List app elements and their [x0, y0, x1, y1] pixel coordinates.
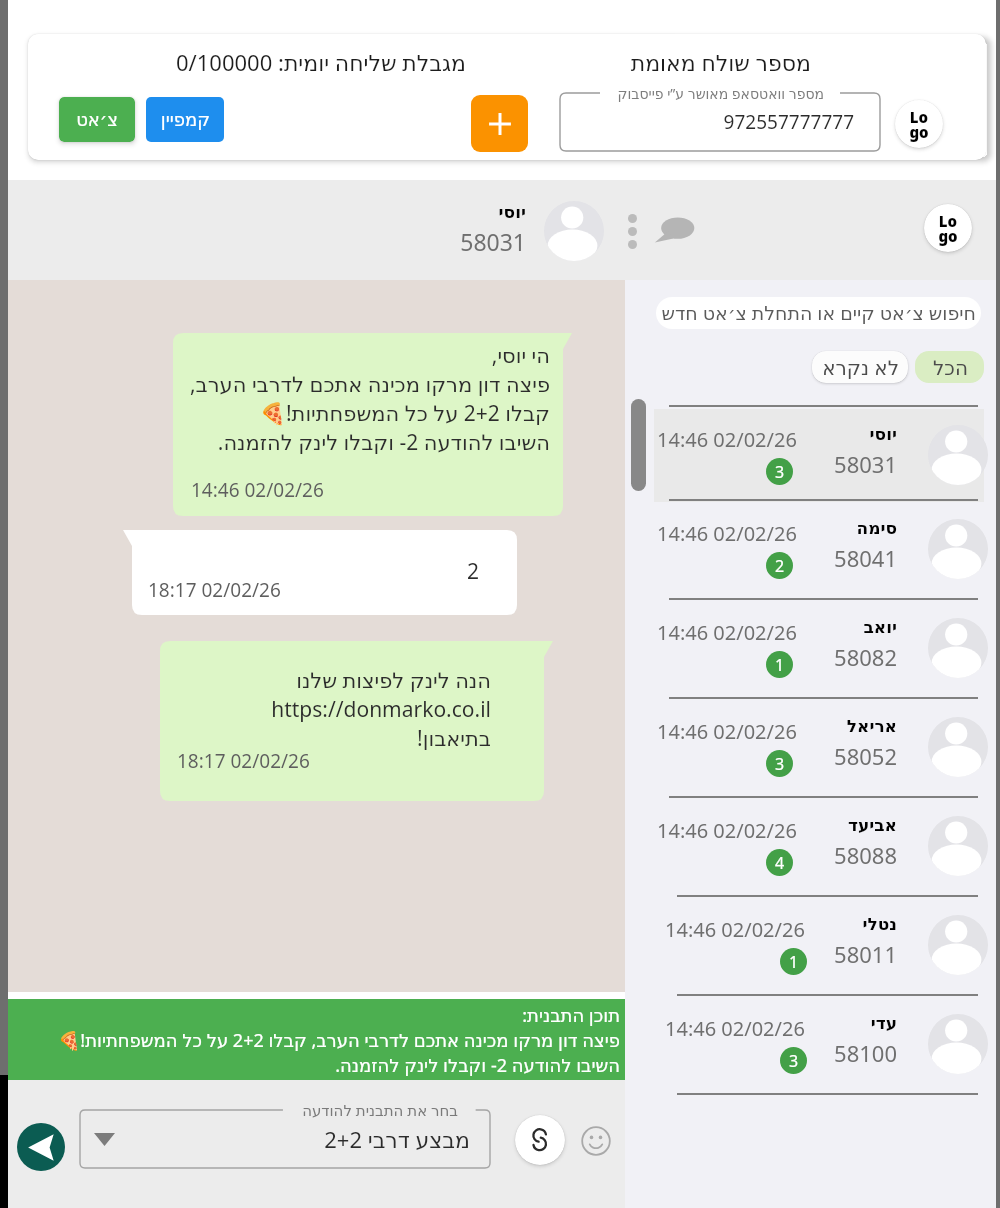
button[interactable]: חיפוש צ׳אט קיים או התחלת צ׳אט חדש	[656, 297, 981, 329]
staticText: 2	[775, 555, 785, 577]
staticText: מגבלת שליחה יומית: 0/100000	[175, 47, 466, 77]
staticText: עדי	[870, 1013, 897, 1033]
staticText: צ׳אט	[76, 109, 118, 130]
button[interactable]: נטלי	[661, 896, 984, 995]
button[interactable]: Messages	[650, 206, 700, 256]
staticText: הי יוסי,	[491, 341, 550, 370]
button[interactable]: Back	[17, 1123, 65, 1171]
staticText: קבלו 2+2 על כל המשפחתיות!🍕	[259, 399, 550, 428]
staticText: לא נקרא	[822, 354, 899, 381]
staticText: תוכן התבנית:	[522, 1003, 620, 1028]
button[interactable]: יואב	[653, 599, 984, 698]
staticText: 58031	[834, 449, 897, 479]
staticText: 14:46 02/02/26	[657, 426, 797, 453]
staticText: Lo go	[909, 107, 929, 142]
staticText: 58041	[834, 543, 897, 573]
staticText: 58052	[834, 741, 897, 771]
staticText: 14:46 02/02/26	[191, 477, 324, 503]
button[interactable]: Logo	[895, 100, 943, 148]
staticText: 58088	[834, 840, 897, 870]
button[interactable]: אביעד	[653, 797, 984, 896]
staticText: 58011	[834, 939, 897, 969]
button[interactable]: עדי	[661, 995, 984, 1094]
button[interactable]: Add	[471, 95, 528, 152]
staticText: נטלי	[862, 914, 897, 934]
staticText: פיצה דון מרקו מכינה אתכם לדרבי הערב,	[189, 370, 550, 399]
button[interactable]: More options	[618, 205, 646, 257]
button[interactable]: צ׳אט	[59, 97, 135, 142]
button[interactable]: Attach link	[515, 1115, 565, 1165]
staticText: 14:46 02/02/26	[657, 817, 797, 844]
staticText: סימה	[856, 518, 897, 538]
staticText: בחר את התבנית להודעה	[302, 1100, 458, 1120]
staticText: 972557777777	[723, 109, 854, 135]
staticText: מספר שולח מאומת	[630, 47, 811, 77]
staticText: אביעד	[847, 815, 897, 835]
staticText: 14:46 02/02/26	[657, 520, 797, 547]
staticText: קמפיין	[160, 109, 210, 130]
staticText: מבצע דרבי 2+2	[324, 1124, 470, 1154]
staticText: 58100	[834, 1038, 897, 1068]
staticText: 3	[775, 461, 785, 483]
staticText: 14:46 02/02/26	[665, 1015, 805, 1042]
staticText: הנה לינק לפיצות שלנו	[296, 666, 491, 695]
staticText: 1	[789, 951, 799, 973]
staticText: 14:46 02/02/26	[657, 718, 797, 745]
staticText: יוסי	[498, 202, 526, 222]
staticText: מספר וואטסאפ מאושר ע”י פייסבוק	[617, 84, 824, 103]
staticText: 1	[775, 654, 785, 676]
staticText: https://donmarko.co.il	[271, 695, 491, 724]
button[interactable]: Logo	[924, 204, 972, 252]
staticText: 4	[775, 852, 785, 874]
button[interactable]: Emoji	[575, 1120, 617, 1162]
staticText: 2	[466, 557, 479, 586]
staticText: השיבו להודעה 2- וקבלו לינק להזמנה.	[335, 1053, 620, 1078]
staticText: אריאל	[846, 716, 897, 736]
staticText: 58082	[834, 642, 897, 672]
staticText: 3	[789, 1050, 799, 1072]
button[interactable]: לא נקרא	[812, 351, 908, 383]
staticText: 18:17 02/02/26	[148, 577, 281, 603]
staticText: יואב	[863, 617, 897, 637]
button[interactable]: אריאל	[653, 698, 984, 797]
button[interactable]: יוסי	[653, 406, 984, 500]
staticText: 14:46 02/02/26	[657, 619, 797, 646]
staticText: השיבו להודעה 2- וקבלו לינק להזמנה.	[217, 428, 550, 457]
staticText: 18:17 02/02/26	[177, 748, 310, 774]
staticText: חיפוש צ׳אט קיים או התחלת צ׳אט חדש	[661, 300, 976, 326]
button[interactable]: סימה	[653, 500, 984, 599]
staticText: 3	[775, 753, 785, 775]
staticText: 14:46 02/02/26	[665, 916, 805, 943]
staticText: בתיאבון!	[417, 724, 491, 753]
button[interactable]: הכל	[915, 351, 984, 383]
staticText: יוסי	[869, 424, 897, 444]
button[interactable]: קמפיין	[146, 97, 224, 142]
staticText: הכל	[932, 356, 968, 379]
staticText: Lo go	[938, 211, 958, 246]
staticText: פיצה דון מרקו מכינה אתכם לדרבי הערב, קבל…	[57, 1028, 620, 1053]
staticText: 58031	[460, 226, 526, 257]
